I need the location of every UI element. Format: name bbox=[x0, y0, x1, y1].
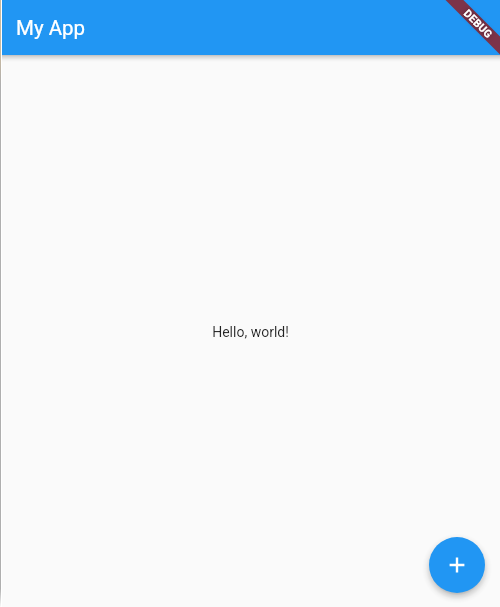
button[interactable]: Add bbox=[429, 537, 485, 593]
staticText: Hello, world! bbox=[212, 324, 289, 340]
staticText: My App bbox=[16, 16, 86, 40]
staticText: DEBUG bbox=[462, 7, 496, 41]
